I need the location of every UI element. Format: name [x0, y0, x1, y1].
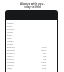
button[interactable]: Photos — [7, 28, 56, 31]
staticText: 82% — [42, 46, 47, 49]
staticText: Always with you - easy to find — [20, 2, 45, 9]
staticText: Dark — [41, 61, 47, 64]
staticText: FAQ — [42, 67, 47, 70]
staticText: Photos — [7, 28, 15, 31]
button[interactable]: Sound — [7, 58, 56, 61]
staticText: On — [43, 58, 47, 61]
staticText: Backup — [7, 49, 15, 52]
staticText: Home — [7, 22, 14, 25]
staticText: v4.2 — [42, 64, 47, 67]
staticText: Mail — [7, 37, 12, 40]
button[interactable]: About — [7, 64, 56, 67]
staticText: Notes — [7, 40, 14, 43]
staticText: On — [43, 52, 47, 55]
staticText: Privacy — [7, 52, 15, 55]
button[interactable]: Theme — [7, 61, 56, 64]
staticText: Theme — [7, 61, 15, 64]
staticText: Chats — [7, 43, 14, 46]
button[interactable]: Backup — [7, 49, 56, 52]
button[interactable]: Alerts — [7, 55, 56, 58]
staticText: Off — [43, 55, 47, 58]
staticText: Battery — [7, 46, 15, 49]
button[interactable]: Files — [7, 25, 56, 28]
staticText: Help — [7, 67, 13, 70]
button[interactable]: Help — [7, 67, 56, 70]
staticText: Docs — [7, 34, 13, 37]
button[interactable]: Privacy — [7, 52, 56, 55]
staticText: Daily — [41, 49, 47, 52]
button[interactable]: Battery — [7, 46, 56, 49]
staticText: Files — [7, 25, 12, 28]
button[interactable]: Docs — [7, 34, 56, 37]
button[interactable]: Mail — [7, 37, 56, 40]
staticText: About — [7, 64, 14, 67]
button[interactable]: Home — [7, 22, 56, 25]
staticText: Music — [7, 31, 14, 34]
button[interactable]: Music — [7, 31, 56, 34]
staticText: Sound — [7, 58, 14, 61]
button[interactable]: Chats — [7, 43, 56, 46]
staticText: Alerts — [7, 55, 14, 58]
button[interactable]: Notes — [7, 40, 56, 43]
